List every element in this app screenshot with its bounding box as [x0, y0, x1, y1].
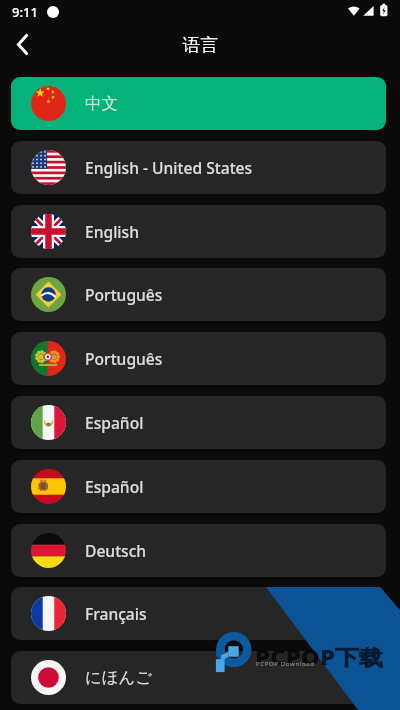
- button[interactable]: 中文: [11, 77, 386, 130]
- button[interactable]: にほんご: [11, 651, 386, 704]
- button[interactable]: Deutsch: [11, 524, 386, 577]
- button[interactable]: English: [11, 205, 386, 258]
- staticText: PCPOP下载: [255, 643, 384, 672]
- staticText: Español: [85, 476, 144, 497]
- button[interactable]: Português: [11, 332, 386, 385]
- staticText: Deutsch: [85, 540, 147, 561]
- staticText: 语言: [183, 34, 218, 56]
- button[interactable]: Español: [11, 396, 386, 449]
- staticText: PCPOP Download: [256, 660, 315, 668]
- staticText: にほんご: [85, 667, 153, 688]
- button[interactable]: Back: [2, 24, 42, 64]
- button[interactable]: Português: [11, 268, 386, 321]
- button[interactable]: Español: [11, 460, 386, 513]
- staticText: English: [85, 221, 139, 242]
- staticText: Português: [85, 348, 163, 369]
- staticText: 9:11: [12, 3, 38, 21]
- staticText: Português: [85, 284, 163, 305]
- staticText: Français: [85, 603, 147, 624]
- staticText: English - United States: [85, 157, 253, 178]
- staticText: Español: [85, 412, 144, 433]
- staticText: 中文: [85, 93, 118, 114]
- button[interactable]: Français: [11, 587, 386, 640]
- button[interactable]: English - United States: [11, 141, 386, 194]
